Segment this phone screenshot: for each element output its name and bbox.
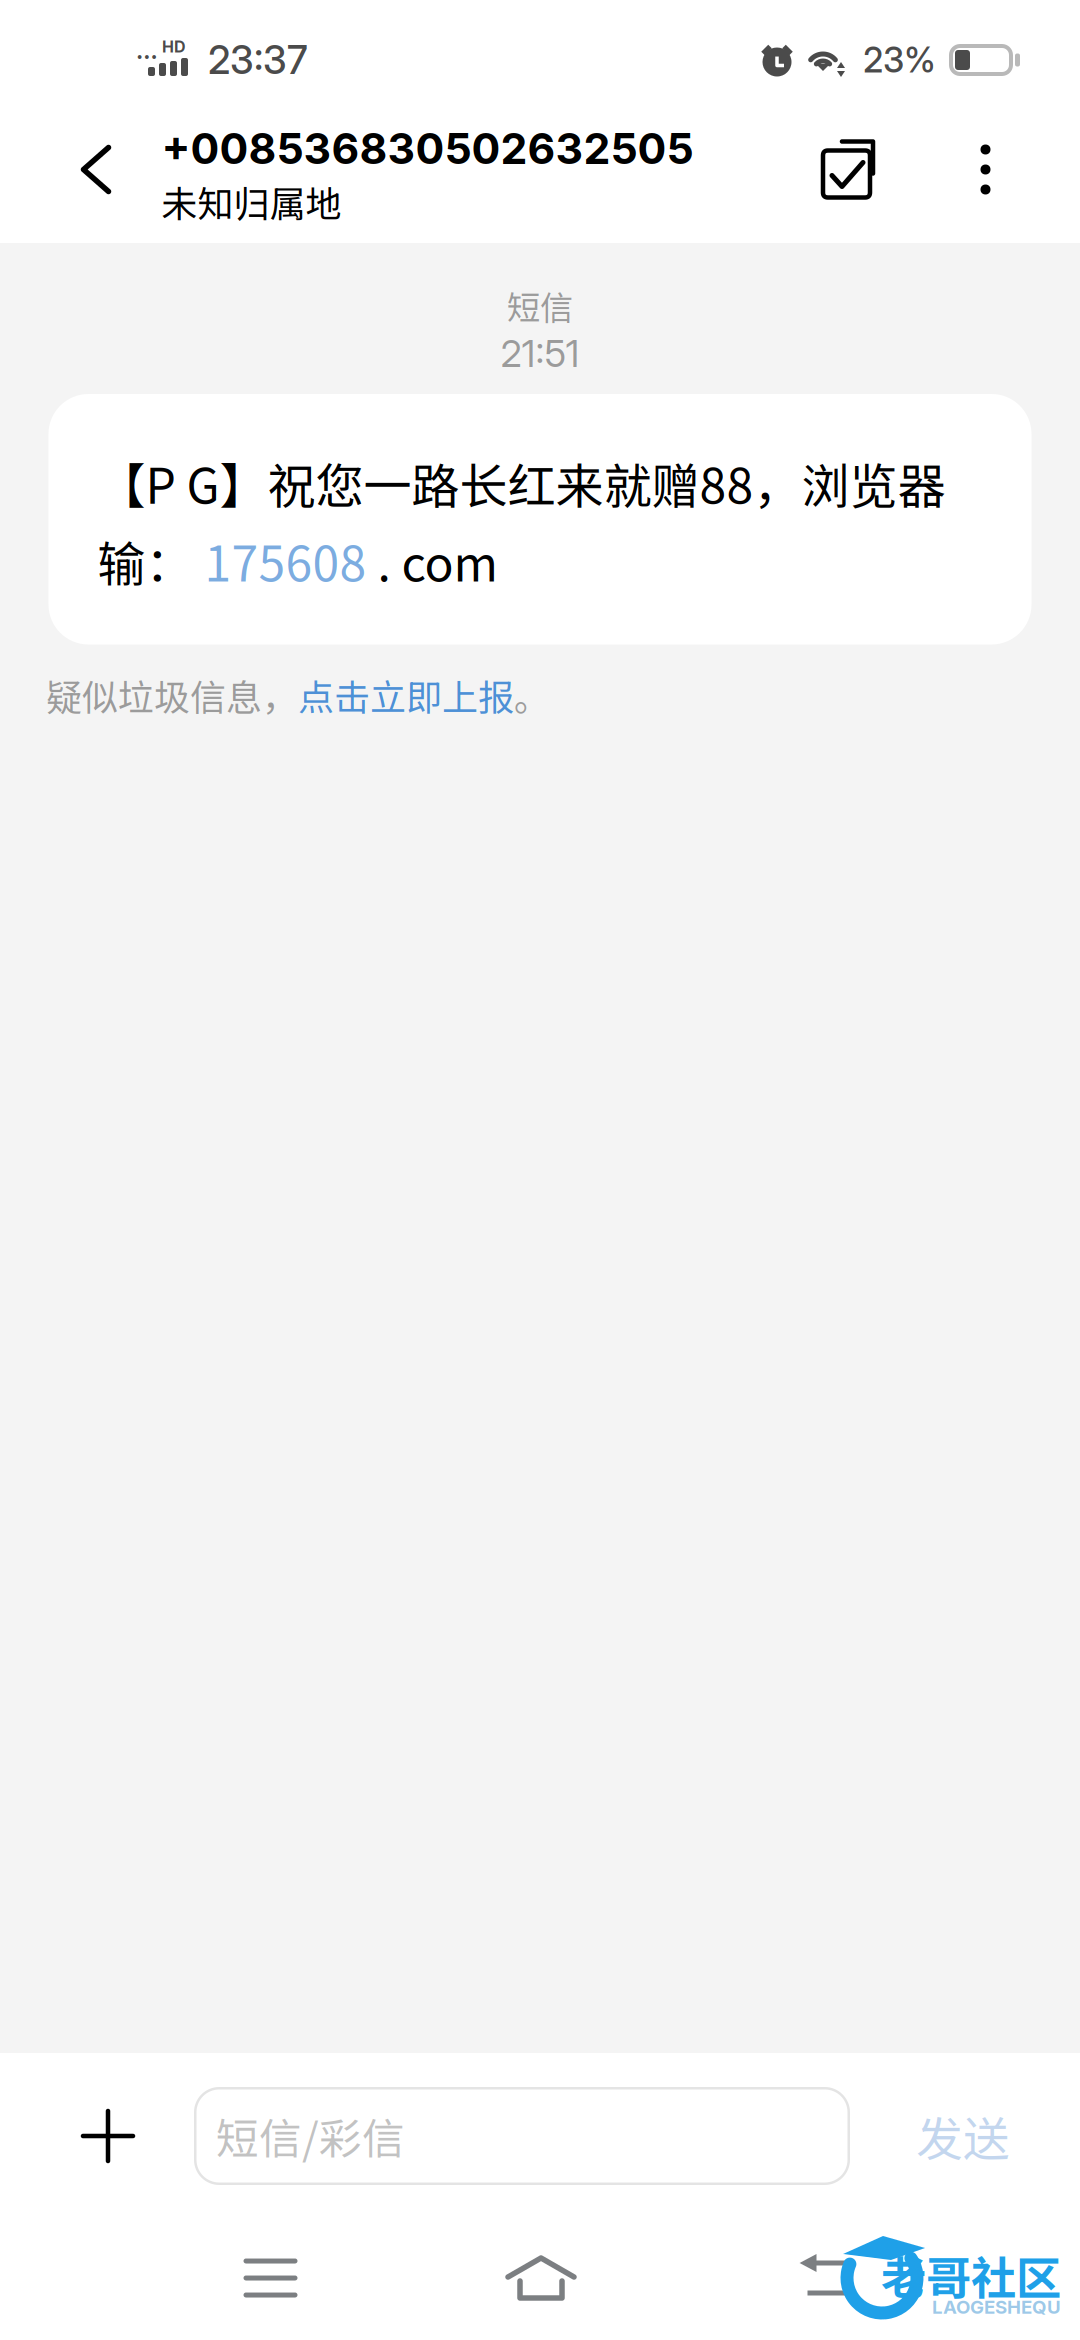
staticText: 短信 — [507, 281, 573, 330]
button[interactable]: Recent apps — [0, 2223, 360, 2333]
staticText: 点击立即上报 — [298, 669, 514, 721]
button[interactable]: 点击立即上报 — [298, 669, 514, 721]
button[interactable]: Home — [360, 2223, 720, 2333]
button[interactable]: Back — [0, 96, 161, 243]
staticText: 。 — [514, 669, 550, 721]
button[interactable]: Select messages — [761, 96, 935, 243]
staticText: HD — [162, 37, 186, 56]
staticText: 疑似垃圾信息， — [46, 669, 298, 721]
staticText: 输： — [97, 526, 204, 595]
staticText: 发送 — [916, 2102, 1010, 2170]
staticText: 23:37 — [208, 37, 308, 83]
button[interactable]: Add attachment — [0, 2077, 194, 2195]
button[interactable]: 短信/彩信 — [194, 2087, 850, 2185]
button[interactable]: Send — [850, 2077, 1080, 2195]
staticText: . com — [366, 526, 497, 595]
staticText: 23% — [863, 39, 936, 81]
staticText: +008536830502632505 — [161, 123, 693, 174]
staticText: 短信/彩信 — [216, 2105, 405, 2167]
staticText: 未知归属地 — [161, 175, 341, 227]
staticText: 21:51 — [500, 331, 579, 376]
staticText: LAOGESHEQU — [932, 2296, 1061, 2318]
staticText: 【P G】祝您一路长红来就赠88，浏览器 — [97, 448, 945, 517]
button[interactable]: More options — [935, 96, 1035, 243]
staticText: 4G — [136, 37, 162, 64]
button[interactable]: Back — [720, 2223, 1080, 2333]
staticText: 175608 — [204, 526, 366, 595]
staticText: 老哥社区 — [881, 2242, 1061, 2308]
